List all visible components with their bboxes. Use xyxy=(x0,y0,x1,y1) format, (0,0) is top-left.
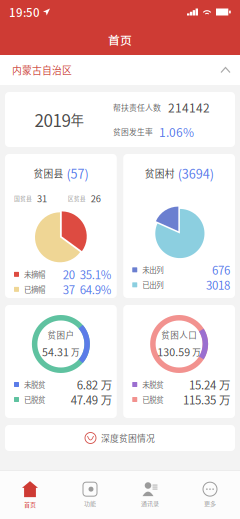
staticText: (57) xyxy=(63,164,88,182)
staticText: 20 xyxy=(63,266,75,283)
staticText: 31 xyxy=(37,191,47,205)
button[interactable]: 内蒙古自治区 xyxy=(0,55,240,85)
staticText: 首页 xyxy=(108,31,132,48)
staticText: 214142 xyxy=(168,99,210,116)
staticText: 676 xyxy=(212,261,230,278)
staticText: 1.06% xyxy=(159,123,194,140)
staticText: 贫困人口 xyxy=(161,329,197,341)
staticText: 2019 xyxy=(34,107,70,132)
staticText: 万 xyxy=(69,345,80,358)
button[interactable]: 首页 xyxy=(0,471,60,519)
staticText: 未脱贫 xyxy=(24,379,45,390)
staticText: 万 xyxy=(190,345,201,358)
staticText: 深度贫困情况 xyxy=(101,432,155,444)
staticText: 未脱贫 xyxy=(142,379,163,390)
button[interactable]: 功能 xyxy=(60,471,120,519)
staticText: 贫困发生率 xyxy=(113,126,153,137)
staticText: 3018 xyxy=(206,276,230,293)
staticText: 130.59 xyxy=(157,344,190,359)
staticText: 帮扶责任人数 xyxy=(113,102,161,113)
staticText: 15.24 万 xyxy=(189,376,230,393)
staticText: 贫困户 xyxy=(47,329,74,341)
staticText: 内蒙古自治区 xyxy=(12,63,72,77)
staticText: 35.1% xyxy=(80,266,112,283)
button[interactable]: 通讯录 xyxy=(120,471,180,519)
staticText: 更多 xyxy=(204,499,216,508)
staticText: 区贫县 xyxy=(68,194,86,202)
staticText: 已脱贫 xyxy=(142,394,163,405)
staticText: 已出列 xyxy=(142,279,163,290)
button[interactable]: 深度贫困情况 xyxy=(5,425,235,451)
staticText: 未摘帽 xyxy=(24,269,45,280)
staticText: 已摘帽 xyxy=(24,284,45,295)
staticText: 国贫县 xyxy=(14,194,32,202)
staticText: 115.35 万 xyxy=(183,391,230,408)
staticText: 首页 xyxy=(24,500,36,509)
staticText: 年 xyxy=(70,110,83,129)
staticText: 贫困村 xyxy=(145,166,175,180)
staticText: 已脱贫 xyxy=(24,394,45,405)
staticText: 未出列 xyxy=(142,264,163,275)
staticText: 47.49 万 xyxy=(71,391,112,408)
staticText: 37 xyxy=(63,281,75,298)
button[interactable]: 更多 xyxy=(180,471,240,519)
staticText: 功能 xyxy=(84,499,96,508)
staticText: 6.82 万 xyxy=(77,376,112,393)
staticText: (3694) xyxy=(175,164,214,182)
staticText: 19:50 xyxy=(9,4,40,20)
staticText: 64.9% xyxy=(80,281,112,298)
staticText: 贫困县 xyxy=(33,166,63,180)
staticText: 54.31 xyxy=(42,344,69,359)
staticText: 通讯录 xyxy=(141,499,159,508)
staticText: 26 xyxy=(91,191,101,205)
